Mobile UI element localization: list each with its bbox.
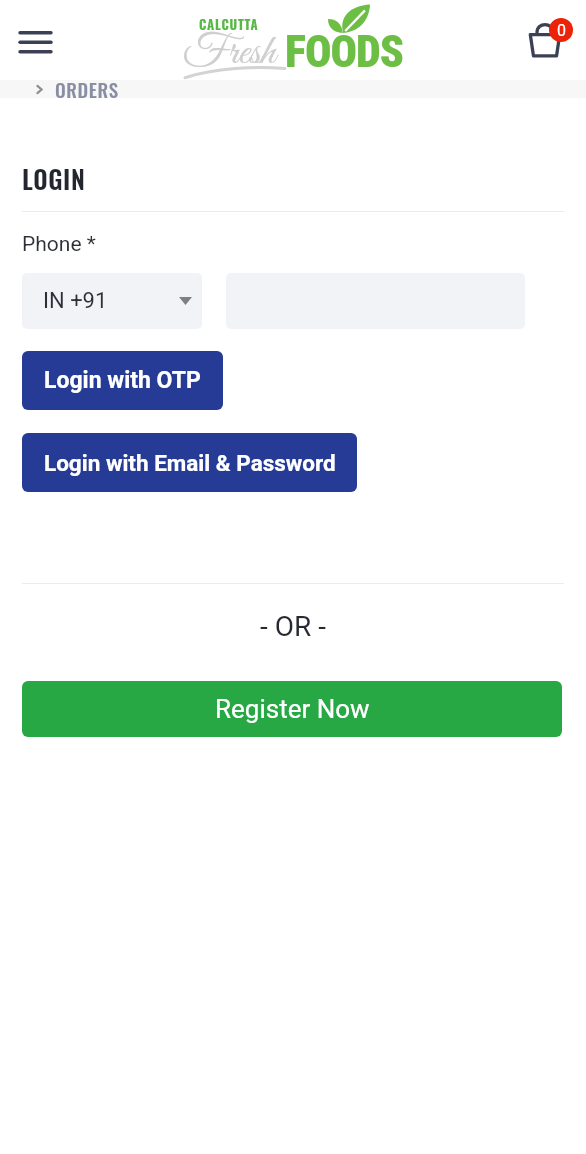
button[interactable] bbox=[0, 80, 586, 98]
staticText: Phone * bbox=[22, 232, 96, 257]
staticText: LOGIN bbox=[22, 160, 86, 197]
staticText: ORDERS bbox=[55, 75, 119, 103]
staticText: FOODS bbox=[285, 26, 403, 78]
staticText: Login with Email & Password bbox=[44, 450, 336, 476]
staticText: CALCUTTA bbox=[199, 14, 259, 33]
button[interactable]: Shopping cart bbox=[518, 8, 576, 66]
button[interactable]: Login with OTP bbox=[22, 351, 223, 410]
button[interactable]: IN +91 bbox=[22, 273, 202, 329]
staticText: Login with OTP bbox=[44, 367, 201, 394]
staticText: IN +91 bbox=[43, 288, 108, 314]
staticText: Register Now bbox=[215, 694, 370, 724]
button[interactable]: Login with Email & Password bbox=[22, 433, 357, 492]
staticText: 0 bbox=[557, 21, 566, 40]
staticText: - OR - bbox=[260, 610, 326, 643]
staticText: Fresh bbox=[183, 26, 276, 80]
button[interactable]: Menu bbox=[8, 10, 63, 65]
button[interactable]: Register Now bbox=[22, 681, 562, 737]
